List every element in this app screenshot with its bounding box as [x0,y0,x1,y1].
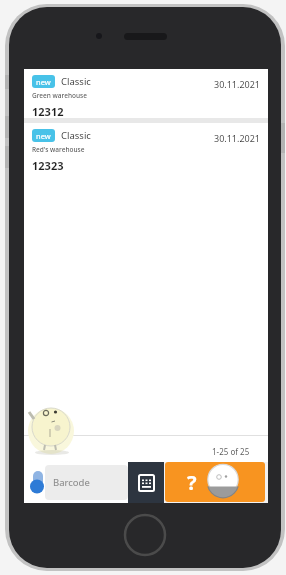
button[interactable]: new [24,123,268,172]
staticText: Green warehouse [32,91,87,100]
staticText: 30.11.2021 [214,132,261,144]
staticText: Classic [61,75,91,88]
staticText: 12323 [32,158,64,172]
button[interactable]: ? [165,462,265,502]
button[interactable] [128,462,164,503]
button[interactable]: new [24,69,268,118]
staticText: 12312 [32,104,64,118]
staticText: Classic [61,129,91,142]
staticText: ? [187,469,197,496]
staticText: Red's warehouse [32,145,85,154]
staticText: 1-25 of 25 [212,446,250,457]
staticText: new [36,131,51,141]
staticText: Barcode [53,476,90,489]
button[interactable]: Barcode [24,462,128,503]
staticText: new [36,77,51,87]
staticText: 30.11.2021 [214,78,261,90]
